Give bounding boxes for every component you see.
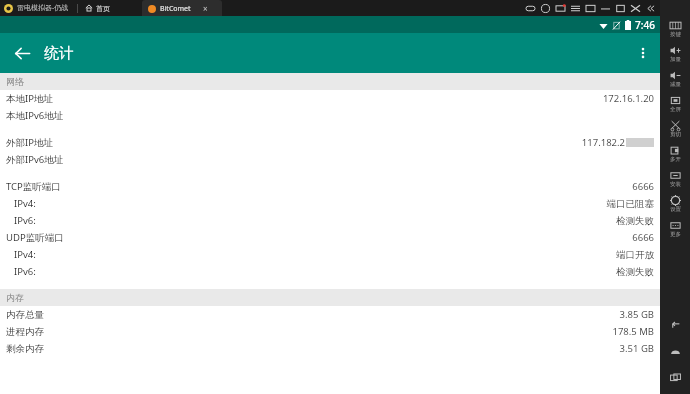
staticText: × — [203, 3, 208, 14]
button[interactable]: 多开 — [660, 143, 690, 165]
button[interactable]: IPv6: — [0, 212, 660, 229]
staticText: 外部IP地址 — [6, 136, 53, 149]
button[interactable]: IPv4: — [0, 246, 660, 263]
staticText: 本地IP地址 — [6, 92, 53, 105]
button[interactable]: 内存总量 — [0, 306, 660, 323]
staticText: 6666 — [632, 231, 654, 244]
button[interactable]: IPv6: — [0, 263, 660, 280]
button[interactable]: recent — [660, 364, 690, 390]
button[interactable]: 外部IPv6地址 — [0, 151, 660, 168]
staticText: 117.182.2 — [581, 136, 625, 149]
button[interactable]: 本地IPv6地址 — [0, 107, 660, 124]
button[interactable]: IPv4: — [0, 195, 660, 212]
button[interactable]: Back — [0, 33, 44, 73]
button[interactable]: UDP监听端口 — [0, 229, 660, 246]
staticText: 加量 — [670, 56, 681, 63]
staticText: 7:46 — [635, 18, 655, 32]
staticText: 178.5 MB — [612, 325, 654, 338]
staticText: 外部IPv6地址 — [6, 153, 64, 166]
button[interactable]: max — [613, 1, 628, 16]
button[interactable]: 按键 — [660, 18, 690, 40]
staticText: 安装 — [670, 181, 681, 188]
button[interactable]: TCP监听端口 — [0, 178, 660, 195]
staticText: 172.16.1.20 — [602, 92, 654, 105]
staticText: 更多 — [670, 231, 681, 238]
button[interactable]: back — [660, 312, 690, 338]
button[interactable]: user — [538, 1, 553, 16]
button[interactable]: 加量 — [660, 43, 690, 65]
staticText: 首页 — [96, 4, 110, 13]
staticText: 进程内存 — [6, 326, 44, 338]
button[interactable]: chev — [643, 1, 658, 16]
staticText: 3.51 GB — [619, 342, 654, 355]
staticText: 多开 — [670, 156, 681, 163]
staticText: 内存 — [6, 292, 24, 303]
staticText: UDP监听端口 — [6, 231, 64, 244]
staticText: 内存总量 — [6, 309, 44, 321]
staticText: IPv4: — [14, 197, 36, 210]
button[interactable]: min — [598, 1, 613, 16]
button[interactable]: 本地IP地址 — [0, 90, 660, 107]
button[interactable]: 减量 — [660, 68, 690, 90]
staticText: 检测失败 — [616, 215, 654, 227]
staticText: 全屏 — [670, 106, 681, 113]
staticText: 本地IPv6地址 — [6, 109, 64, 122]
button[interactable]: 设置 — [660, 193, 690, 215]
staticText: 雷电模拟器-仍战 — [17, 3, 69, 13]
button[interactable]: 外部IP地址 — [0, 134, 660, 151]
button[interactable]: close — [628, 1, 643, 16]
staticText: IPv4: — [14, 248, 36, 261]
button[interactable]: BitComet — [142, 0, 222, 16]
staticText: 剪切 — [670, 131, 681, 138]
staticText: 检测失败 — [616, 266, 654, 278]
button[interactable]: menu — [568, 1, 583, 16]
staticText: 网络 — [6, 76, 24, 87]
button[interactable]: 剪切 — [660, 118, 690, 140]
button[interactable]: 安装 — [660, 168, 690, 190]
staticText: 剩余内存 — [6, 343, 44, 355]
staticText: 减量 — [670, 81, 681, 88]
staticText: BitComet — [160, 4, 191, 14]
staticText: 3.85 GB — [619, 308, 654, 321]
button[interactable]: 剩余内存 — [0, 340, 660, 357]
staticText: IPv6: — [14, 214, 36, 227]
staticText: 统计 — [44, 44, 74, 63]
staticText: IPv6: — [14, 265, 36, 278]
staticText: 设置 — [670, 206, 681, 213]
button[interactable]: 进程内存 — [0, 323, 660, 340]
button[interactable]: home — [660, 338, 690, 364]
staticText: 按键 — [670, 31, 681, 38]
staticText: 6666 — [632, 180, 654, 193]
staticText: 端口开放 — [616, 249, 654, 261]
button[interactable]: pad — [523, 1, 538, 16]
staticText: 端口已阻塞 — [606, 198, 654, 210]
button[interactable]: More options — [626, 33, 660, 73]
button[interactable]: win — [583, 1, 598, 16]
staticText: TCP监听端口 — [6, 180, 61, 193]
button[interactable]: 全屏 — [660, 93, 690, 115]
button[interactable]: mail — [553, 1, 568, 16]
button[interactable]: 更多 — [660, 218, 690, 240]
